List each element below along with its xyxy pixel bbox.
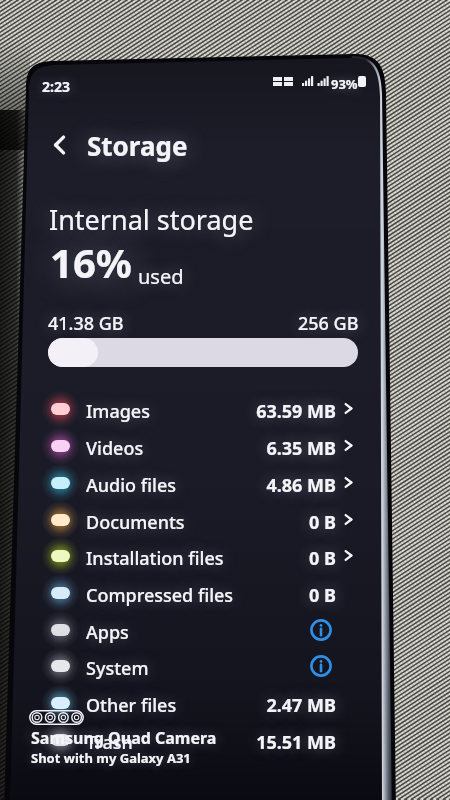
staticText: Storage [87,128,188,163]
staticText: 0 B [220,583,336,608]
staticText: Trash [86,730,133,755]
staticText: System [86,656,149,681]
staticText: 2.47 MB [220,693,336,718]
button[interactable]: Info [309,618,333,642]
staticText: Installation files [86,546,224,571]
staticText: Samsung Quad Camera [31,727,217,749]
staticText: 4.86 MB [220,473,336,498]
button[interactable]: Documents [40,502,360,538]
staticText: 0 B [220,546,336,571]
staticText: 41.38 GB [48,311,124,336]
staticText: Documents [86,510,185,535]
staticText: 16% [50,235,132,289]
staticText: 6.35 MB [220,436,336,461]
button[interactable]: Installation files [40,538,360,574]
button[interactable]: Other files [40,685,360,721]
button[interactable]: Info [309,654,333,678]
staticText: Images [86,399,150,424]
button[interactable]: Apps [40,612,360,648]
staticText: Internal storage [49,201,254,238]
staticText: used [138,263,184,290]
staticText: Compressed files [86,583,234,608]
staticText: Apps [86,620,129,645]
staticText: Other files [86,693,177,718]
button[interactable]: Videos [40,428,360,464]
button[interactable]: Images [40,391,360,427]
button[interactable]: Back [45,130,75,160]
staticText: 2:23 [42,77,70,96]
button[interactable]: System [40,648,360,684]
button[interactable]: Compressed files [40,575,360,611]
staticText: 256 GB [298,311,359,336]
button[interactable]: Trash [40,722,360,758]
staticText: Audio files [86,473,176,498]
staticText: Videos [86,436,144,461]
button[interactable]: Audio files [40,465,360,501]
staticText: 63.59 MB [220,399,336,424]
staticText: 0 B [220,510,336,535]
staticText: Shot with my Galaxy A31 [31,749,191,767]
staticText: 93% [331,75,358,93]
staticText: 15.51 MB [220,730,336,755]
